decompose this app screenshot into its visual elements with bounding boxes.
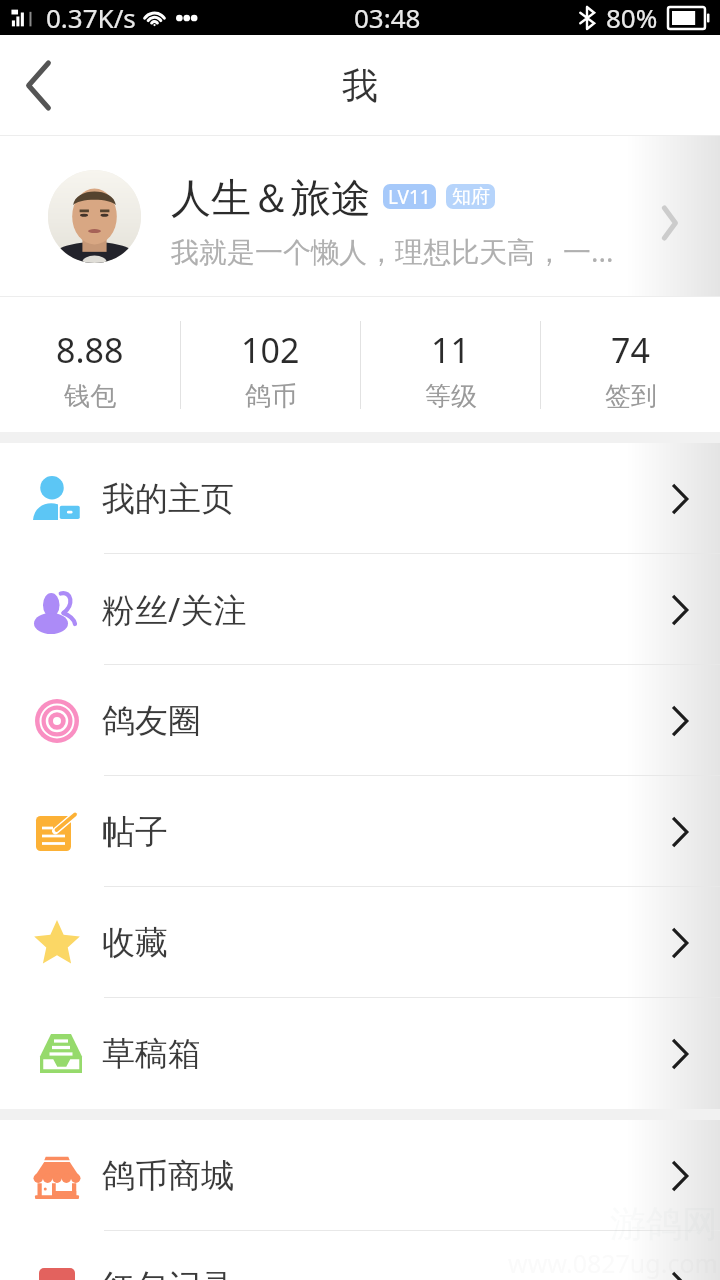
staticText: 粉丝/关注 (102, 587, 247, 632)
staticText: 我就是一个懒人，理想比天高，一... (171, 232, 614, 270)
button[interactable]: 74 (541, 317, 720, 413)
staticText: 签到 (605, 380, 657, 413)
button[interactable]: Back (0, 35, 80, 136)
button[interactable]: 我的主页 (0, 443, 720, 554)
button[interactable]: 红包记录 (0, 1231, 720, 1280)
staticText: 收藏 (102, 922, 168, 964)
staticText: www.0827ug.com (508, 1246, 718, 1280)
staticText: 鸽币商城 (102, 1155, 234, 1197)
staticText: 游鸽网 (610, 1201, 718, 1246)
staticText: 草稿箱 (102, 1033, 201, 1075)
staticText: 11 (431, 327, 470, 373)
staticText: 知府 (452, 185, 490, 209)
button[interactable]: 粉丝/关注 (0, 554, 720, 665)
staticText: 鸽币 (245, 380, 297, 413)
staticText: 80% (606, 0, 658, 35)
button[interactable]: 帖子 (0, 776, 720, 887)
staticText: 帖子 (102, 811, 168, 853)
staticText: 03:48 (354, 0, 421, 35)
staticText: 钱包 (64, 380, 116, 413)
staticText: 红包记录 (102, 1266, 234, 1280)
staticText: 74 (611, 327, 650, 373)
staticText: 我 (342, 63, 378, 108)
staticText: 等级 (425, 380, 477, 413)
button[interactable]: 草稿箱 (0, 998, 720, 1109)
button[interactable]: 人生＆旅途 (0, 136, 720, 297)
staticText: 鸽友圈 (102, 700, 201, 742)
button[interactable]: 鸽币商城 (0, 1120, 720, 1231)
staticText: LV11 (388, 184, 431, 209)
staticText: 0.37K/s (46, 0, 136, 35)
staticText: 我的主页 (102, 478, 234, 520)
staticText: 人生＆旅途 (171, 173, 371, 223)
button[interactable]: 8.88 (0, 317, 180, 413)
button[interactable]: 收藏 (0, 887, 720, 998)
button[interactable]: 11 (361, 317, 540, 413)
staticText: 102 (241, 327, 300, 373)
button[interactable]: 鸽友圈 (0, 665, 720, 776)
button[interactable]: 102 (181, 317, 360, 413)
staticText: 8.88 (56, 327, 124, 373)
